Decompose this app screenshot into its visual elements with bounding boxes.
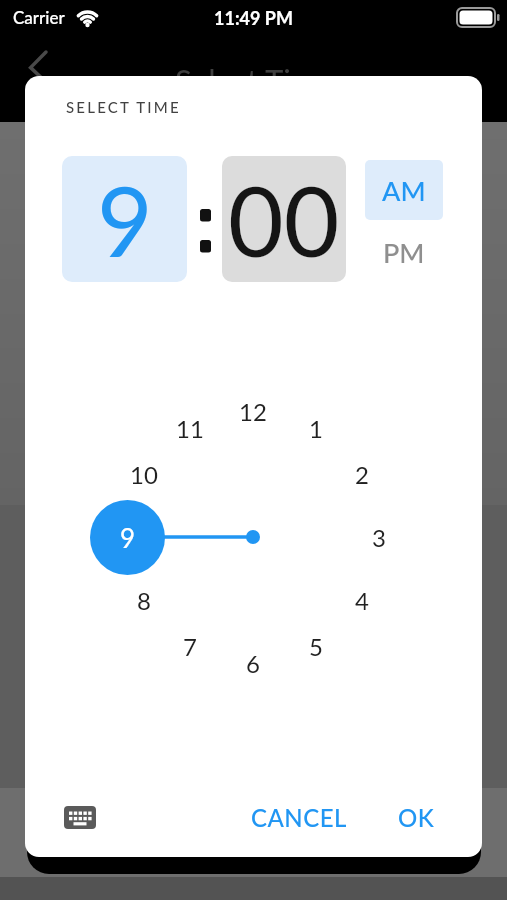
button[interactable]: OK [381,797,451,837]
button[interactable]: 10 [122,456,166,492]
button[interactable]: 2 [340,456,384,492]
staticText: 2 [355,460,369,489]
button[interactable]: 4 [340,582,384,618]
staticText: 7 [183,632,197,661]
staticText: SELECT TIME [66,98,181,116]
button[interactable]: 5 [294,628,338,664]
staticText: 00 [228,162,340,277]
button[interactable]: 6 [231,645,275,681]
button[interactable]: CANCEL [239,797,359,837]
staticText: 1 [309,414,323,443]
button[interactable]: 12 [231,393,275,429]
button[interactable]: 8 [122,582,166,618]
staticText: 4 [355,586,369,615]
button[interactable]: 9 [62,156,187,282]
button[interactable]: 11 [168,410,212,446]
staticText: 5 [309,632,323,661]
staticText: 10 [130,460,158,489]
button[interactable]: 1 [294,410,338,446]
button[interactable] [61,801,99,833]
staticText: OK [398,803,435,832]
staticText: Carrier [13,7,65,27]
staticText: 11:49 PM [214,7,293,29]
staticText: 9 [120,522,136,553]
button[interactable]: 7 [168,628,212,664]
staticText: 11 [176,414,204,443]
staticText: AM [382,174,426,206]
button[interactable]: PM [365,230,442,274]
staticText: 8 [137,586,151,615]
staticText: CANCEL [251,803,347,832]
button[interactable]: 9 [90,500,165,575]
staticText: 9 [97,162,153,277]
staticText: 6 [246,649,260,678]
staticText: 3 [372,523,386,552]
button[interactable]: 00 [222,156,346,282]
staticText: Select Time [175,61,333,98]
staticText: 12 [239,397,267,426]
button[interactable]: 3 [357,519,401,555]
staticText: PM [383,236,425,268]
button[interactable]: AM [365,160,443,220]
